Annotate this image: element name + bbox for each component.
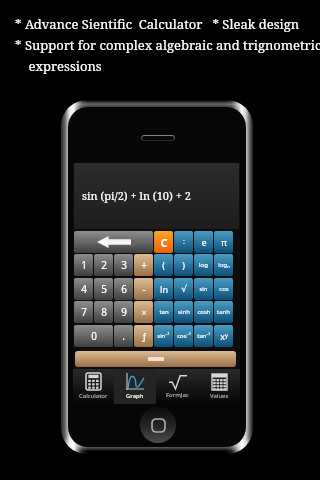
staticText: * Support for complex algebraic and trig… bbox=[15, 36, 320, 54]
staticText: - bbox=[142, 282, 146, 296]
staticText: ( bbox=[162, 259, 165, 271]
staticText: Graph bbox=[126, 392, 144, 400]
staticText: xʸ bbox=[220, 330, 228, 342]
staticText: tan⁻¹ bbox=[197, 332, 211, 340]
button[interactable]: × bbox=[134, 301, 153, 323]
button[interactable]: 4 bbox=[74, 278, 93, 300]
button[interactable]: cos⁻¹ bbox=[174, 325, 193, 347]
staticText: cos bbox=[219, 285, 229, 293]
staticText: logₙ bbox=[218, 261, 230, 269]
button[interactable]: cos bbox=[214, 278, 233, 300]
button[interactable]: FormJac bbox=[156, 369, 198, 404]
button[interactable]: + bbox=[134, 254, 153, 276]
staticText: Calculator bbox=[79, 392, 108, 400]
staticText: 8 bbox=[101, 305, 107, 319]
staticText: 9 bbox=[121, 305, 127, 319]
button[interactable]: 1 bbox=[74, 254, 93, 276]
button[interactable]: 8 bbox=[94, 301, 113, 323]
staticText: 4 bbox=[81, 282, 87, 296]
staticText: cosh bbox=[197, 308, 211, 316]
button[interactable]: sinh bbox=[174, 301, 193, 323]
button[interactable]: tan bbox=[154, 301, 173, 323]
button[interactable]: xʸ bbox=[214, 325, 233, 347]
button[interactable]: 2 bbox=[94, 254, 113, 276]
staticText: √ bbox=[181, 284, 187, 294]
staticText: C bbox=[160, 235, 168, 250]
button[interactable]: ( bbox=[154, 254, 173, 276]
button[interactable]: 7 bbox=[74, 301, 93, 323]
staticText: tanh bbox=[217, 308, 230, 316]
staticText: FormJac bbox=[166, 391, 189, 399]
button[interactable]: sin bbox=[194, 278, 213, 300]
button[interactable]: π bbox=[214, 231, 233, 253]
staticText: * Advance Sientific Calculator * Sleak d… bbox=[15, 15, 300, 33]
button[interactable]: logₙ bbox=[214, 254, 233, 276]
button[interactable]: 9 bbox=[114, 301, 133, 323]
button[interactable]: 6 bbox=[114, 278, 133, 300]
button[interactable]: tan⁻¹ bbox=[194, 325, 213, 347]
button[interactable]: tanh bbox=[214, 301, 233, 323]
button[interactable]: log bbox=[194, 254, 213, 276]
button[interactable]: Graph bbox=[114, 369, 156, 404]
button[interactable]: e bbox=[194, 231, 213, 253]
staticText: sin (pi/2) + ln (10) + 2 bbox=[82, 188, 191, 203]
staticText: 5 bbox=[101, 282, 107, 296]
staticText: × bbox=[141, 306, 147, 318]
staticText: π bbox=[221, 236, 227, 248]
staticText: ln bbox=[160, 283, 168, 295]
button[interactable]: ) bbox=[174, 254, 193, 276]
staticText: Values bbox=[210, 392, 229, 400]
button[interactable]: - bbox=[134, 278, 153, 300]
staticText: cos⁻¹ bbox=[177, 332, 191, 340]
button[interactable]: . bbox=[114, 325, 133, 347]
button[interactable]: √ bbox=[174, 278, 193, 300]
button[interactable]: 5 bbox=[94, 278, 113, 300]
staticText: log bbox=[199, 261, 208, 269]
staticText: tan bbox=[159, 308, 169, 316]
staticText: 7 bbox=[81, 305, 87, 319]
staticText: sinh bbox=[178, 308, 190, 316]
button[interactable]: 0 bbox=[74, 325, 113, 347]
staticText: sin⁻¹ bbox=[157, 332, 170, 340]
staticText: + bbox=[141, 258, 147, 272]
button[interactable]: cosh bbox=[194, 301, 213, 323]
button[interactable]: Values bbox=[198, 369, 240, 404]
staticText: 6 bbox=[121, 282, 127, 296]
staticText: e bbox=[201, 236, 207, 248]
staticText: 0 bbox=[91, 329, 97, 343]
button[interactable]: : bbox=[174, 231, 193, 253]
button[interactable]: ƒ bbox=[134, 325, 153, 347]
button[interactable] bbox=[74, 231, 153, 253]
staticText: 2 bbox=[101, 258, 107, 272]
button[interactable]: ln bbox=[154, 278, 173, 300]
staticText: . bbox=[122, 329, 125, 343]
button[interactable]: sin⁻¹ bbox=[154, 325, 173, 347]
staticText: sin bbox=[199, 285, 208, 293]
button[interactable]: 3 bbox=[114, 254, 133, 276]
button[interactable]: C bbox=[154, 231, 173, 253]
staticText: ƒ bbox=[142, 330, 146, 342]
button[interactable]: Calculator bbox=[73, 369, 114, 404]
staticText: : bbox=[183, 237, 185, 247]
staticText: expressions bbox=[15, 57, 102, 75]
staticText: ) bbox=[182, 259, 185, 271]
staticText: 3 bbox=[121, 258, 127, 272]
staticText: 1 bbox=[81, 258, 87, 272]
